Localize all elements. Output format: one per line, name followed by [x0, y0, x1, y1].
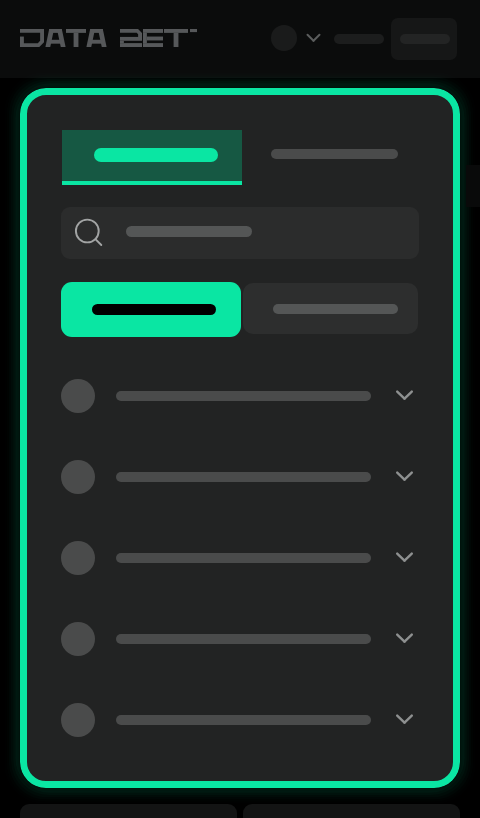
- button[interactable]: [61, 701, 413, 739]
- button[interactable]: [62, 130, 242, 185]
- button[interactable]: [61, 282, 241, 337]
- button[interactable]: [61, 207, 419, 259]
- button[interactable]: [61, 539, 413, 577]
- button[interactable]: Sign in: [391, 18, 457, 60]
- button[interactable]: [243, 283, 418, 334]
- button[interactable]: [61, 377, 413, 415]
- button[interactable]: DATA BET home: [19, 29, 199, 47]
- button[interactable]: [61, 458, 413, 496]
- button[interactable]: [61, 620, 413, 658]
- button[interactable]: Expand account menu: [306, 32, 321, 43]
- button[interactable]: [262, 130, 422, 185]
- button[interactable]: Profile: [271, 25, 297, 51]
